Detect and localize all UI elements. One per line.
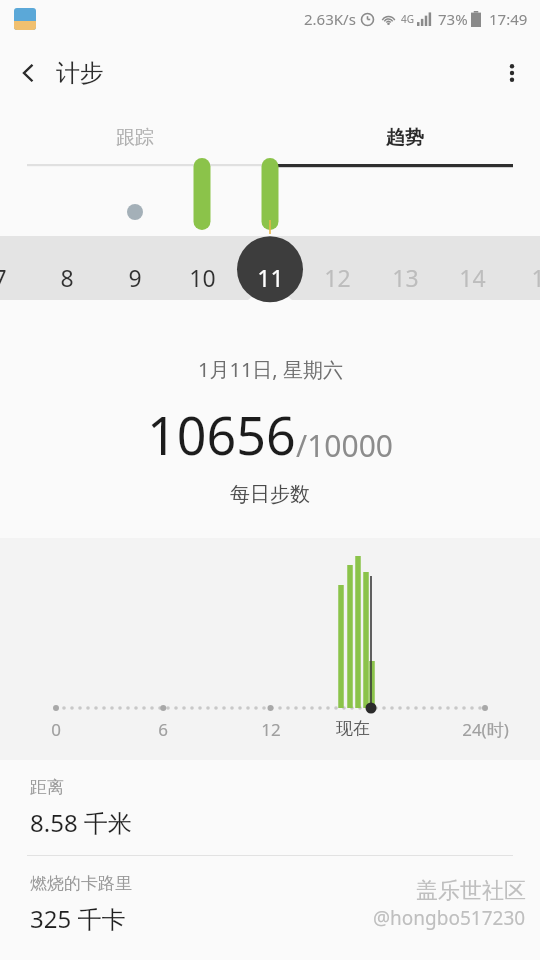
staticText: 盖乐世社区 <box>416 877 526 905</box>
staticText: 14 <box>459 262 486 293</box>
staticText: 12 <box>324 262 351 293</box>
staticText: 1月11日, 星期六 <box>198 356 343 383</box>
staticText: 24(时) <box>462 718 509 741</box>
button[interactable]: 10 <box>168 236 236 320</box>
button[interactable]: 11 <box>236 236 304 320</box>
button[interactable]: 8 <box>33 236 101 320</box>
staticText: 8.58 千米 <box>30 806 132 839</box>
staticText: 9 <box>128 262 142 293</box>
button[interactable]: 12 <box>303 236 371 320</box>
button[interactable]: 距离 <box>0 760 540 856</box>
staticText: 现在 <box>336 718 370 739</box>
staticText: 0 <box>51 718 61 741</box>
button[interactable]: 燃烧的卡路里 <box>0 856 540 952</box>
button[interactable]: 跟踪 <box>0 108 270 168</box>
staticText: 73% <box>438 9 468 29</box>
staticText: 2.63K/s <box>304 9 356 29</box>
button[interactable]: 1 <box>504 236 540 320</box>
button[interactable]: Back <box>0 45 56 101</box>
staticText: 4G <box>401 12 414 26</box>
button[interactable]: 14 <box>438 236 506 320</box>
button[interactable]: 9 <box>101 236 169 320</box>
staticText: 1 <box>531 262 540 293</box>
staticText: 10656 <box>147 399 296 470</box>
staticText: 325 千卡 <box>30 902 126 935</box>
staticText: @hongbo517230 <box>373 905 526 931</box>
staticText: 距离 <box>30 777 64 798</box>
staticText: 7 <box>0 262 7 293</box>
staticText: 11 <box>257 262 284 293</box>
staticText: 12 <box>261 718 281 741</box>
staticText: 计步 <box>56 58 104 88</box>
button[interactable]: 13 <box>371 236 439 320</box>
staticText: 17:49 <box>489 9 528 29</box>
button[interactable]: 趋势 <box>270 108 540 168</box>
staticText: 6 <box>158 718 168 741</box>
button[interactable]: More options <box>484 45 540 101</box>
staticText: 燃烧的卡路里 <box>30 873 132 894</box>
staticText: 13 <box>392 262 419 293</box>
staticText: 8 <box>60 262 74 293</box>
staticText: 每日步数 <box>230 482 310 507</box>
staticText: 跟踪 <box>116 126 154 150</box>
staticText: 10 <box>189 262 216 293</box>
staticText: /10000 <box>296 425 393 466</box>
staticText: 趋势 <box>386 126 424 150</box>
button[interactable]: 7 <box>0 236 34 320</box>
